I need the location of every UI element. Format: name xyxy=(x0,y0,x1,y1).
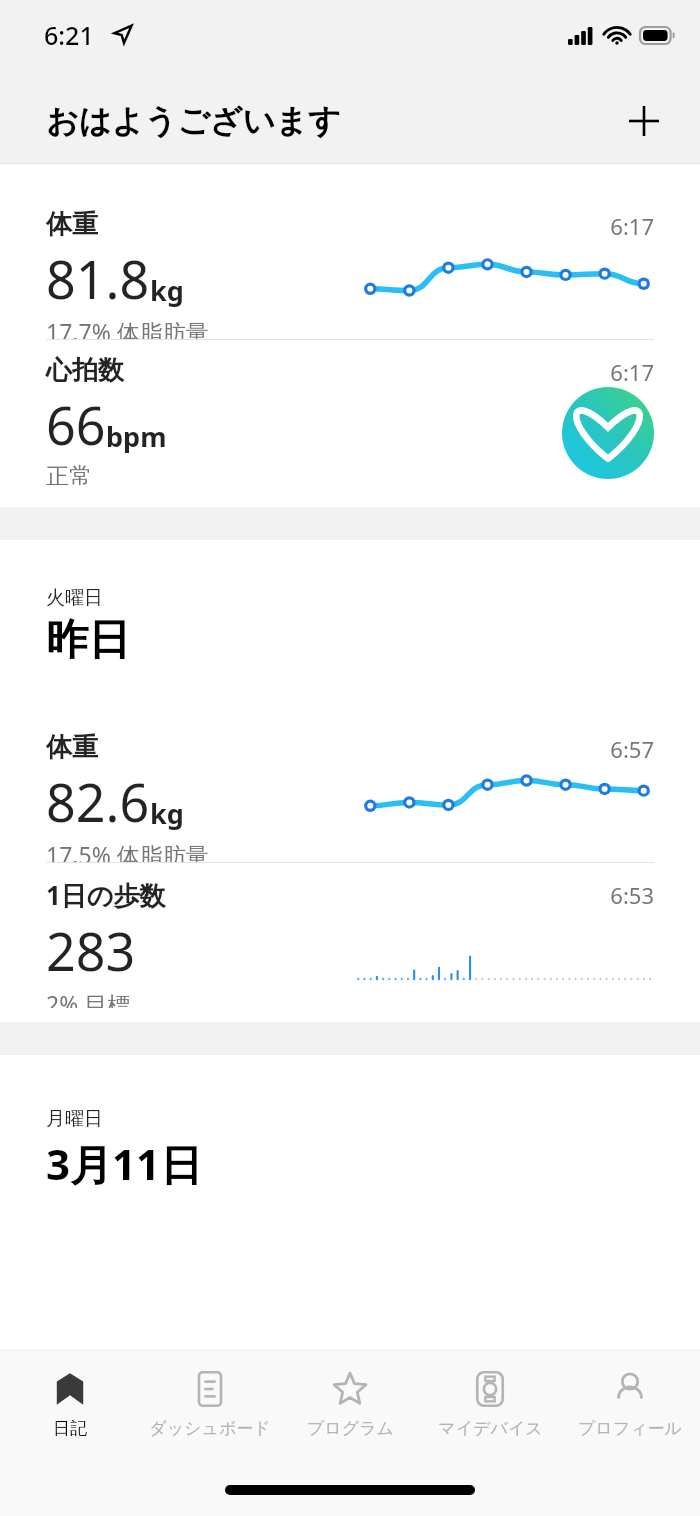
button[interactable]: プログラム xyxy=(280,1351,420,1457)
staticText: 6:57 xyxy=(610,734,654,764)
staticText: 6:17 xyxy=(610,357,654,387)
staticText: 1日の歩数 xyxy=(46,877,166,913)
button[interactable]: ダッシュボード xyxy=(140,1351,280,1457)
staticText: 17.7% 体脂肪量 xyxy=(46,316,209,339)
staticText: 6:21 xyxy=(44,18,94,52)
staticText: 82.6 xyxy=(46,766,150,837)
staticText: 体重 xyxy=(46,208,98,241)
staticText: プロフィール xyxy=(578,1418,682,1439)
button[interactable]: 体重 xyxy=(0,717,700,862)
staticText: 6:53 xyxy=(610,880,654,910)
staticText: ダッシュボード xyxy=(149,1418,271,1439)
staticText: 6:17 xyxy=(610,211,654,241)
staticText: 66 xyxy=(46,389,106,460)
staticText: 2% 目標 xyxy=(46,988,131,1008)
staticText: kg xyxy=(150,272,184,309)
button[interactable]: マイデバイス xyxy=(420,1351,560,1457)
staticText: 心拍数 xyxy=(46,354,124,387)
staticText: 正常 xyxy=(46,462,92,485)
staticText: 月曜日 xyxy=(46,1107,103,1131)
staticText: マイデバイス xyxy=(438,1418,543,1439)
staticText: 火曜日 xyxy=(46,586,103,610)
button[interactable]: 1日の歩数 xyxy=(0,863,700,1008)
staticText: 昨日 xyxy=(46,614,130,667)
staticText: 日記 xyxy=(53,1418,87,1439)
staticText: おはようございます xyxy=(46,101,341,141)
staticText: 283 xyxy=(46,915,136,986)
button[interactable]: 心拍数 xyxy=(0,340,700,485)
staticText: 81.8 xyxy=(46,243,150,314)
button[interactable]: プロフィール xyxy=(560,1351,700,1457)
button[interactable]: 日記 xyxy=(0,1351,140,1457)
staticText: 17.5% 体脂肪量 xyxy=(46,839,209,862)
staticText: 3月11日 xyxy=(46,1135,203,1192)
staticText: bpm xyxy=(106,418,167,455)
staticText: 体重 xyxy=(46,731,98,764)
staticText: kg xyxy=(150,795,184,832)
button[interactable]: 体重 xyxy=(0,194,700,339)
staticText: プログラム xyxy=(307,1418,394,1439)
button[interactable]: Add xyxy=(618,95,670,147)
